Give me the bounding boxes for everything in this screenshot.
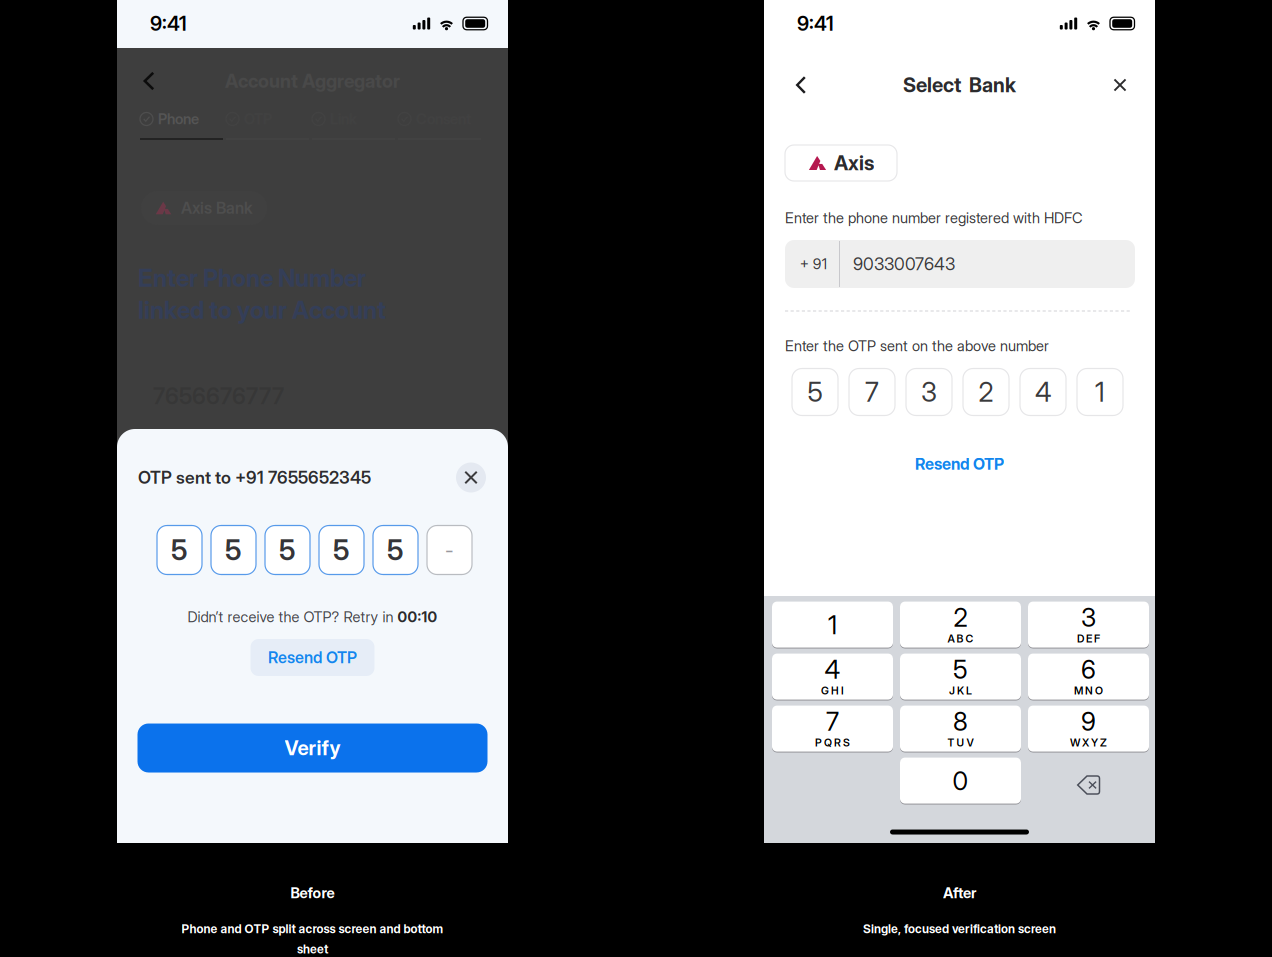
staticText: 1 [1095, 376, 1105, 408]
button[interactable]: Delete [1028, 758, 1149, 804]
staticText: sheet [297, 942, 328, 956]
staticText: 5 [807, 376, 822, 408]
button[interactable]: 3 [1028, 602, 1149, 648]
staticText: Enter the OTP sent on the above number [785, 337, 1049, 355]
button[interactable]: Resend OTP [889, 452, 1029, 476]
button[interactable]: Close [456, 462, 486, 492]
staticText: W X Y Z [1070, 736, 1107, 749]
staticText: 4 [824, 655, 840, 684]
button[interactable]: Resend OTP [250, 639, 374, 676]
staticText: Phone and OTP split across screen and bo… [181, 922, 443, 936]
staticText: 3 [1081, 603, 1096, 632]
button[interactable]: 6 [1028, 654, 1149, 700]
staticText: linked to your Account [138, 296, 386, 324]
button[interactable]: 2 [900, 602, 1021, 648]
staticText: Account Aggregator [225, 70, 400, 92]
staticText: 9:41 [797, 12, 834, 35]
button[interactable]: 0 [900, 758, 1021, 804]
button[interactable]: 4 [772, 654, 893, 700]
staticText: G H I [821, 684, 844, 697]
staticText: 7 [865, 376, 879, 408]
staticText: J K L [949, 684, 972, 697]
staticText: 5 [279, 533, 296, 566]
staticText: Before [290, 884, 334, 902]
staticText: 3 [921, 376, 937, 408]
staticText: 5 [171, 533, 188, 566]
staticText: 5 [953, 655, 968, 684]
staticText: Resend OTP [268, 648, 357, 667]
button[interactable]: Close [1103, 68, 1137, 102]
staticText: Select Bank [903, 73, 1016, 97]
button[interactable]: 9 [1028, 706, 1149, 752]
staticText: Enter Phone Number [138, 264, 366, 292]
staticText: 5 [333, 533, 350, 566]
staticText: Enter the phone number registered with H… [785, 209, 1083, 227]
staticText: Axis Bank [181, 199, 253, 217]
staticText: Phone [158, 110, 199, 128]
staticText: Single, focused verification screen [863, 922, 1056, 936]
button[interactable]: Back [784, 68, 818, 102]
button[interactable]: Verify [137, 723, 487, 772]
staticText: 9 [1081, 707, 1096, 736]
staticText: 1 [828, 610, 837, 640]
staticText: P Q R S [815, 736, 850, 749]
staticText: Verify [284, 736, 340, 760]
staticText: 9:41 [150, 12, 187, 35]
staticText: After [943, 884, 976, 902]
staticText: 00:10 [397, 608, 437, 626]
staticText: A B C [947, 632, 973, 645]
staticText: 8 [953, 707, 968, 736]
staticText: 9033007643 [853, 254, 955, 274]
button[interactable]: 1 [772, 602, 893, 648]
staticText: 5 [225, 533, 242, 566]
staticText: D E F [1077, 632, 1100, 645]
button[interactable]: 8 [900, 706, 1021, 752]
staticText: M N O [1074, 684, 1103, 697]
staticText: T U V [947, 736, 973, 749]
staticText: 7 [826, 707, 839, 736]
staticText: 2 [953, 603, 967, 632]
staticText: 2 [978, 376, 993, 408]
staticText: - [445, 538, 454, 562]
staticText: OTP sent to +91 7655652345 [138, 467, 371, 488]
staticText: 4 [1035, 376, 1051, 408]
staticText: Resend OTP [915, 455, 1004, 473]
staticText: Didn’t receive the OTP? Retry in [187, 608, 397, 626]
staticText: Axis [834, 151, 874, 175]
staticText: 5 [387, 533, 404, 566]
button[interactable]: Axis [785, 145, 897, 181]
staticText: 6 [1081, 655, 1096, 684]
staticText: + 91 [800, 255, 827, 273]
button[interactable]: 5 [900, 654, 1021, 700]
staticText: 0 [952, 766, 968, 796]
button[interactable]: 7 [772, 706, 893, 752]
